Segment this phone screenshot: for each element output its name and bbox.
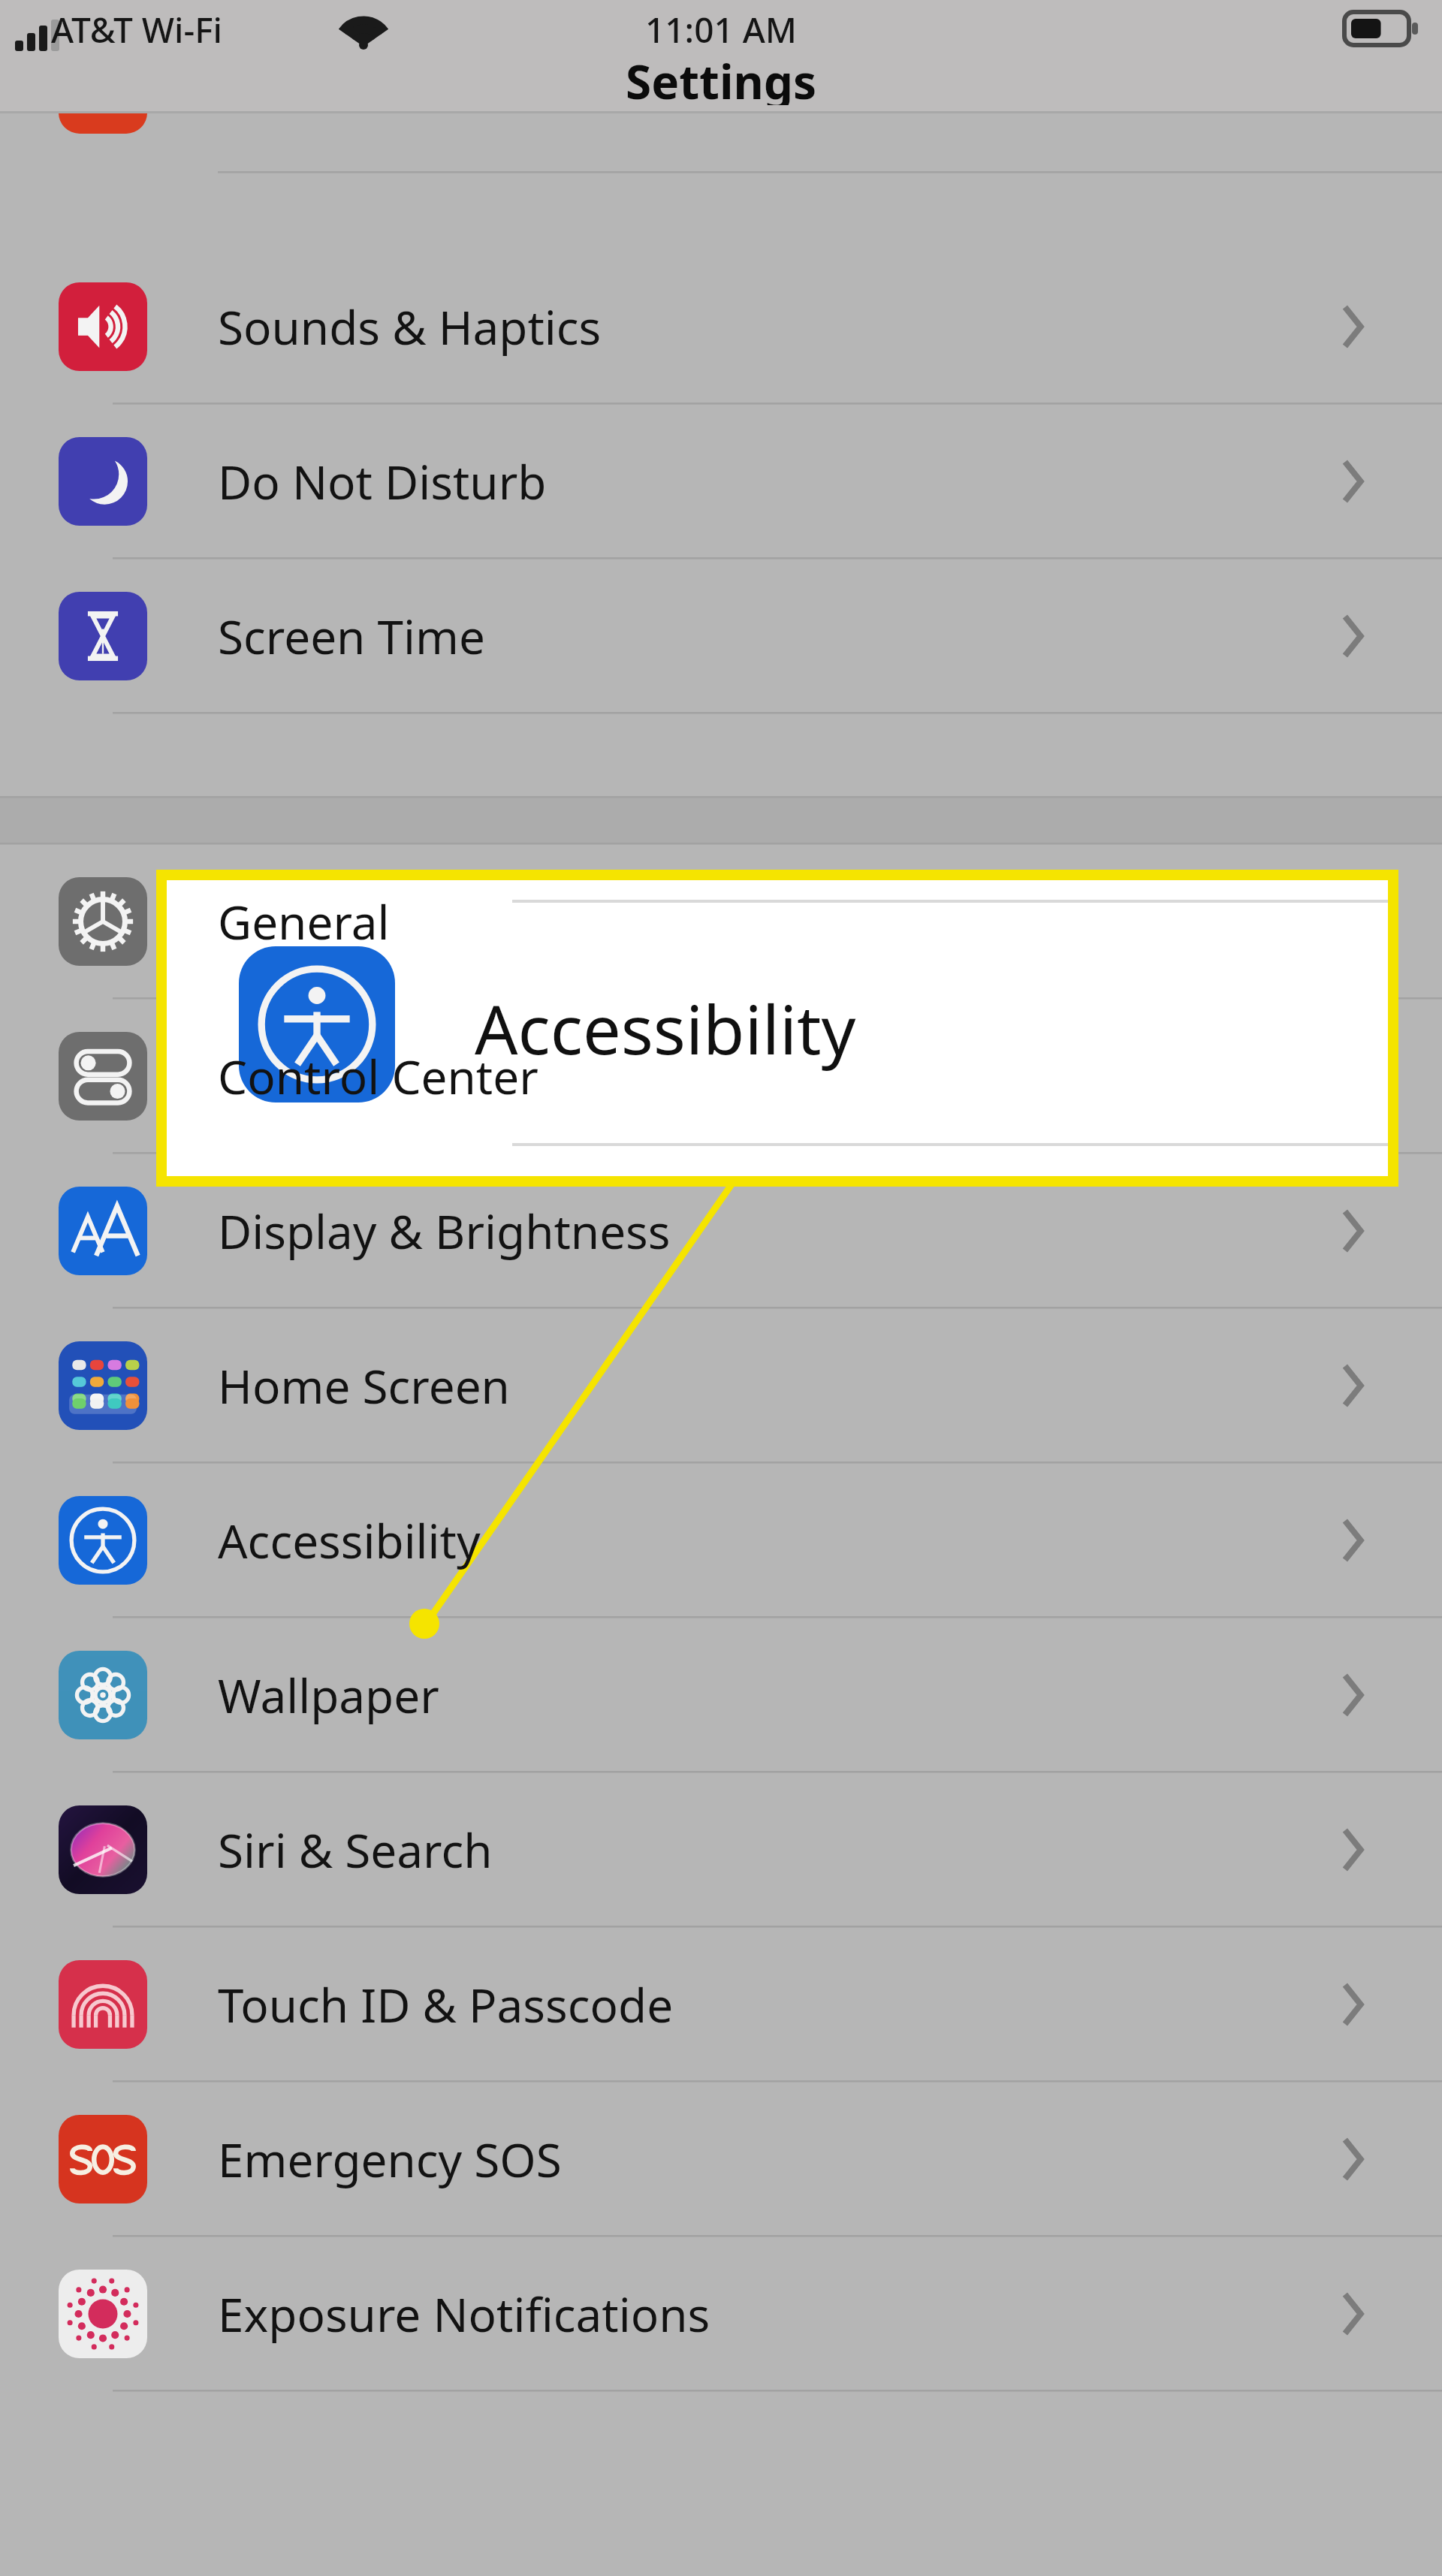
- staticText: Do Not Disturb: [218, 450, 547, 513]
- staticText: Settings: [626, 50, 817, 105]
- staticText: Accessibility: [475, 982, 856, 1075]
- button[interactable]: Siri & Search: [0, 1772, 1442, 1927]
- button[interactable]: Accessibility: [167, 880, 1388, 1176]
- button[interactable]: Screen Time: [0, 559, 1442, 713]
- staticText: Accessibility: [218, 1509, 481, 1572]
- button[interactable]: Touch ID & Passcode: [0, 1927, 1442, 2082]
- button[interactable]: Control Center: [0, 999, 1442, 1154]
- staticText: AT&T Wi-Fi: [51, 6, 222, 51]
- button[interactable]: Home Screen: [0, 1308, 1442, 1463]
- staticText: General: [218, 890, 390, 953]
- button[interactable]: Do Not Disturb: [0, 404, 1442, 559]
- button[interactable]: Settings: [0, 50, 1442, 105]
- button[interactable]: Exposure Notifications: [0, 2237, 1442, 2391]
- staticText: Siri & Search: [218, 1818, 493, 1881]
- staticText: Emergency SOS: [218, 2128, 562, 2191]
- staticText: Screen Time: [218, 605, 485, 668]
- staticText: Home Screen: [218, 1354, 510, 1417]
- button[interactable]: Wallpaper: [0, 1618, 1442, 1772]
- staticText: Sounds & Haptics: [218, 295, 602, 358]
- button[interactable]: Emergency SOS: [0, 2082, 1442, 2237]
- staticText: 11:01 AM: [645, 6, 798, 51]
- staticText: Wallpaper: [218, 1664, 439, 1727]
- button[interactable]: Display & Brightness: [0, 1154, 1442, 1308]
- button[interactable]: Sounds & Haptics: [0, 249, 1442, 404]
- staticText: Touch ID & Passcode: [218, 1973, 674, 2036]
- staticText: Display & Brightness: [218, 1199, 671, 1262]
- staticText: Exposure Notifications: [218, 2282, 710, 2345]
- button[interactable]: General: [0, 844, 1442, 999]
- button[interactable]: Accessibility: [0, 1463, 1442, 1618]
- staticText: Control Center: [218, 1045, 538, 1108]
